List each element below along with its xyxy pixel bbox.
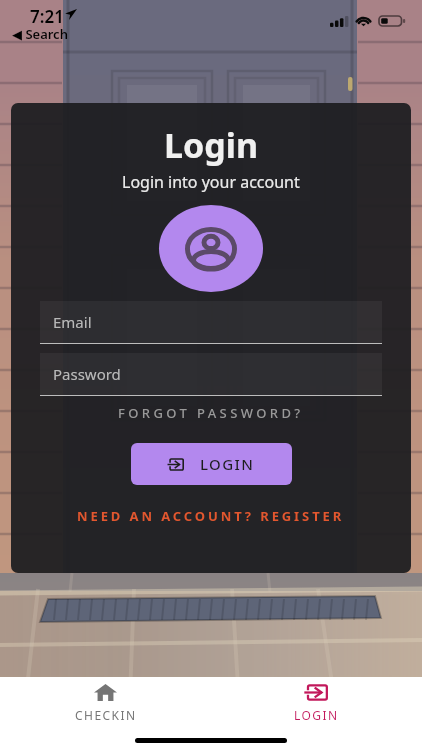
staticText: FORGOT PASSWORD? bbox=[118, 404, 304, 422]
button[interactable]: FORGOT PASSWORD? bbox=[112, 402, 310, 424]
staticText: Email bbox=[53, 312, 92, 332]
staticText: 7:21 bbox=[30, 5, 64, 28]
staticText: Login bbox=[164, 122, 259, 168]
staticText: LOGIN bbox=[200, 454, 255, 474]
staticText: NEED AN ACCOUNT? REGISTER bbox=[77, 507, 345, 525]
button[interactable]: NEED AN ACCOUNT? REGISTER bbox=[71, 505, 351, 527]
button[interactable]: Email bbox=[40, 301, 382, 343]
button[interactable]: LOGIN bbox=[131, 443, 292, 485]
staticText: Login into your account bbox=[122, 171, 300, 193]
button[interactable]: LOGIN bbox=[211, 677, 422, 729]
button[interactable]: CHECKIN bbox=[0, 677, 211, 729]
staticText: LOGIN bbox=[294, 707, 339, 723]
staticText: Password bbox=[53, 364, 121, 384]
staticText: ◀ Search bbox=[12, 25, 68, 43]
button[interactable]: Password bbox=[40, 353, 382, 395]
staticText: CHECKIN bbox=[75, 707, 137, 723]
